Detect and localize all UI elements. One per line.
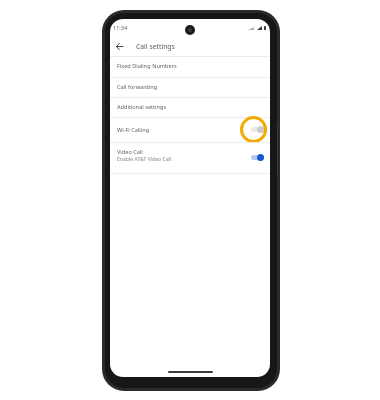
button[interactable]: Fixed Dialing Numbers — [110, 56, 270, 76]
button[interactable]: Wi-Fi Calling — [110, 117, 270, 142]
staticText: Video Call — [117, 148, 143, 156]
staticText: Call settings — [136, 42, 175, 51]
staticText: Call forwarding — [117, 83, 158, 91]
staticText: Additional settings — [117, 103, 167, 111]
staticText: Wi-Fi Calling — [117, 126, 150, 134]
staticText: 11:34 — [113, 24, 128, 31]
button[interactable]: Toggle Wi-Fi Calling — [251, 126, 264, 133]
button[interactable]: Video Call — [110, 142, 270, 174]
button[interactable]: Toggle Video Call — [251, 154, 264, 161]
button[interactable]: Additional settings — [110, 97, 270, 117]
button[interactable]: Call forwarding — [110, 77, 270, 97]
staticText: Enable AT&T Video Call — [117, 156, 172, 163]
button[interactable]: Back — [113, 40, 126, 53]
staticText: Fixed Dialing Numbers — [117, 62, 177, 70]
